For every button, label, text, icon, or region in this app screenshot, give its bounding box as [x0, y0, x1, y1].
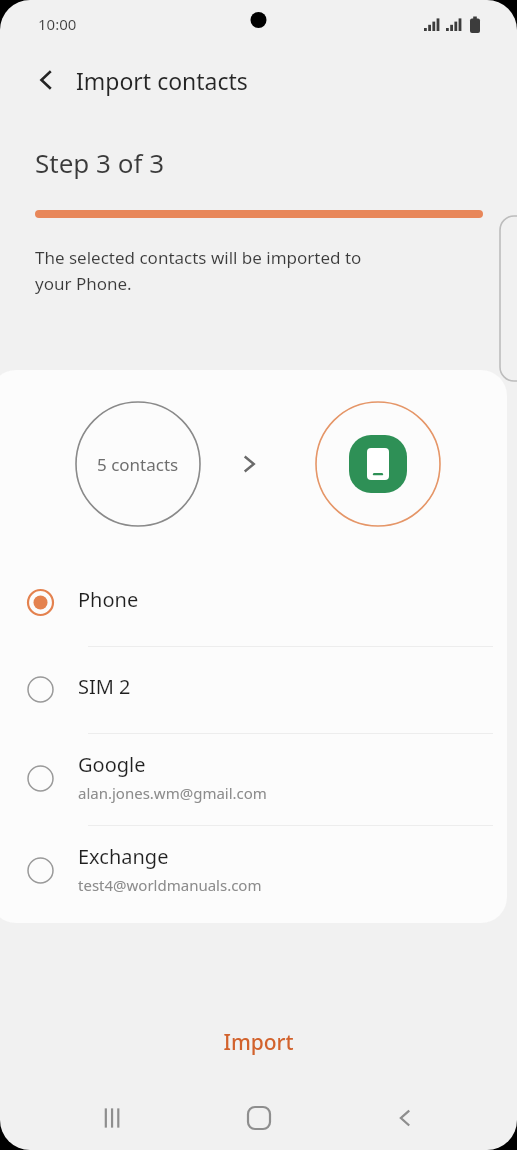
staticText: test4@worldmanuals.com: [78, 875, 262, 895]
staticText: alan.jones.wm@gmail.com: [78, 783, 267, 803]
staticText: SIM 2: [78, 673, 131, 700]
button[interactable]: Back: [370, 1087, 440, 1149]
staticText: 5 contacts: [97, 453, 179, 476]
button[interactable]: Back: [26, 60, 66, 100]
button[interactable]: SIM 2: [0, 647, 507, 734]
staticText: Step 3 of 3: [35, 145, 165, 180]
staticText: Exchange: [78, 843, 169, 870]
button[interactable]: Home: [224, 1087, 294, 1149]
staticText: Google: [78, 751, 146, 778]
button[interactable]: Import: [0, 1012, 517, 1072]
staticText: Phone: [78, 586, 139, 613]
button[interactable]: Google: [0, 734, 507, 826]
button[interactable]: Recent apps: [77, 1087, 147, 1149]
staticText: The selected contacts will be imported t…: [35, 246, 362, 295]
button[interactable]: Exchange: [0, 826, 507, 918]
staticText: Import: [223, 1028, 294, 1057]
staticText: Import contacts: [76, 65, 248, 96]
button[interactable]: Phone: [0, 560, 507, 647]
staticText: 10:00: [38, 14, 77, 34]
